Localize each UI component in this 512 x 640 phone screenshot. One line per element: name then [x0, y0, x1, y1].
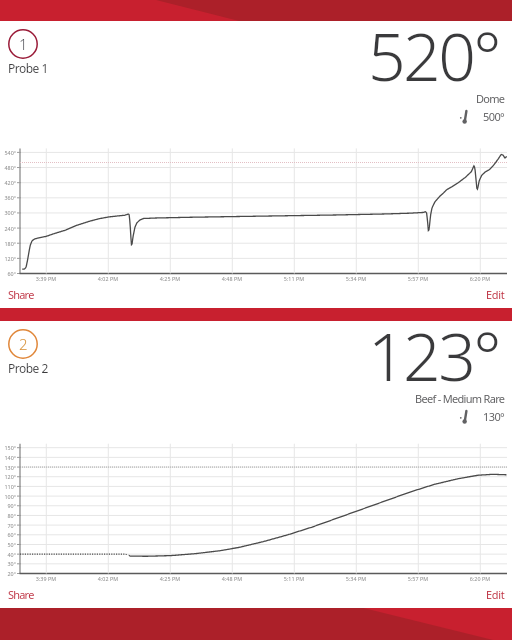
staticText: 1: [19, 34, 28, 54]
staticText: 123°: [368, 310, 499, 400]
staticText: Probe 2: [8, 360, 48, 376]
staticText: 500°: [483, 109, 505, 124]
staticText: 130°: [483, 409, 505, 424]
button[interactable]: 2: [8, 329, 38, 359]
staticText: Dome: [476, 91, 505, 106]
button[interactable]: Edit: [476, 284, 512, 305]
staticText: Share: [8, 587, 34, 602]
button[interactable]: Share: [0, 584, 44, 605]
staticText: Probe 1: [8, 60, 48, 76]
staticText: Share: [8, 287, 34, 302]
button[interactable]: 1: [8, 29, 38, 59]
staticText: 520°: [368, 10, 499, 100]
staticText: Edit: [486, 287, 505, 302]
other: Target temperature: [460, 410, 468, 424]
staticText: Beef - Medium Rare: [415, 391, 505, 406]
staticText: 2: [19, 334, 28, 354]
button[interactable]: Edit: [476, 584, 512, 605]
other: Target temperature: [460, 110, 468, 124]
button[interactable]: Share: [0, 284, 44, 305]
staticText: Edit: [486, 587, 505, 602]
